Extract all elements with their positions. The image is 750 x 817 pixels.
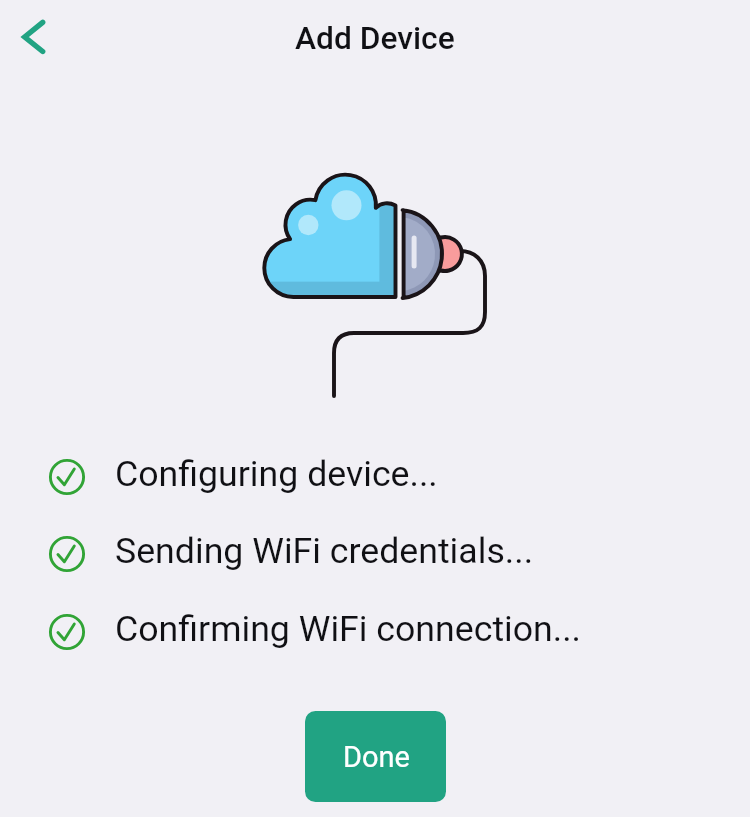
staticText: Sending WiFi credentials... [115, 530, 534, 572]
staticText: Done [343, 740, 410, 774]
button[interactable]: Confirming WiFi connection... [0, 606, 582, 658]
button[interactable]: Done [305, 711, 446, 802]
staticText: Add Device [295, 20, 455, 57]
staticText: Confirming WiFi connection... [115, 608, 582, 650]
staticText: Configuring device... [115, 453, 438, 495]
button[interactable]: Back [5, 9, 62, 66]
button[interactable]: Sending WiFi credentials... [0, 528, 534, 580]
button[interactable]: Configuring device... [0, 451, 438, 503]
